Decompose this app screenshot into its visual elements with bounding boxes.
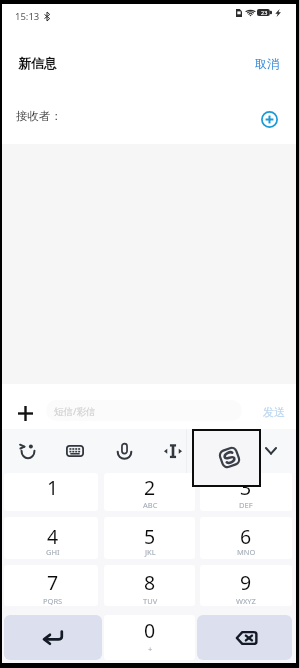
button[interactable]: Keyboard <box>59 435 91 467</box>
button[interactable]: Delete <box>197 615 292 660</box>
staticText: 4 <box>47 523 59 549</box>
staticText: 接收者： <box>16 109 62 123</box>
staticText: GHI <box>46 547 60 557</box>
button[interactable] <box>104 517 195 559</box>
staticText: 新信息 <box>18 55 57 71</box>
staticText: 23 <box>261 9 268 16</box>
button[interactable] <box>4 473 98 511</box>
staticText: ABC <box>143 500 158 510</box>
button[interactable]: Hide keyboard <box>255 435 287 467</box>
button[interactable] <box>104 615 195 660</box>
button[interactable]: Enter <box>4 615 102 660</box>
staticText: 发送 <box>263 405 285 419</box>
staticText: JKL <box>145 547 156 557</box>
button[interactable]: Move cursor <box>157 435 189 467</box>
staticText: DEF <box>239 500 253 510</box>
button[interactable] <box>4 565 98 606</box>
staticText: + <box>148 644 153 654</box>
staticText: TUV <box>143 596 158 606</box>
staticText: 取消 <box>255 56 279 71</box>
button[interactable]: Emoji <box>12 435 44 467</box>
button[interactable] <box>4 517 98 559</box>
staticText: 5 <box>144 523 156 549</box>
button[interactable]: Sogou input method <box>194 431 259 485</box>
staticText: 1 <box>47 474 59 500</box>
staticText: 2 <box>144 474 156 500</box>
button[interactable]: Add recipient <box>253 103 285 135</box>
staticText: 6 <box>240 523 252 549</box>
button[interactable] <box>200 473 292 511</box>
staticText: 8 <box>144 569 156 595</box>
staticText: 0 <box>144 617 156 643</box>
button[interactable] <box>104 473 195 511</box>
staticText: PQRS <box>43 596 63 606</box>
staticText: MNO <box>237 547 256 557</box>
staticText: 9 <box>240 569 252 595</box>
button[interactable] <box>200 565 292 606</box>
staticText: 7 <box>47 569 59 595</box>
staticText: WXYZ <box>236 596 256 606</box>
button[interactable]: 短信/彩信 <box>46 400 242 421</box>
button[interactable] <box>104 565 195 606</box>
button[interactable]: Voice input <box>108 435 140 467</box>
button[interactable]: Add attachment <box>11 399 40 428</box>
staticText: 短信/彩信 <box>54 405 96 418</box>
staticText: 15:13 <box>15 10 40 23</box>
button[interactable] <box>200 517 292 559</box>
staticText: 3 <box>240 474 252 500</box>
button[interactable]: 发送 <box>254 398 294 426</box>
button[interactable]: 取消 <box>245 49 289 77</box>
